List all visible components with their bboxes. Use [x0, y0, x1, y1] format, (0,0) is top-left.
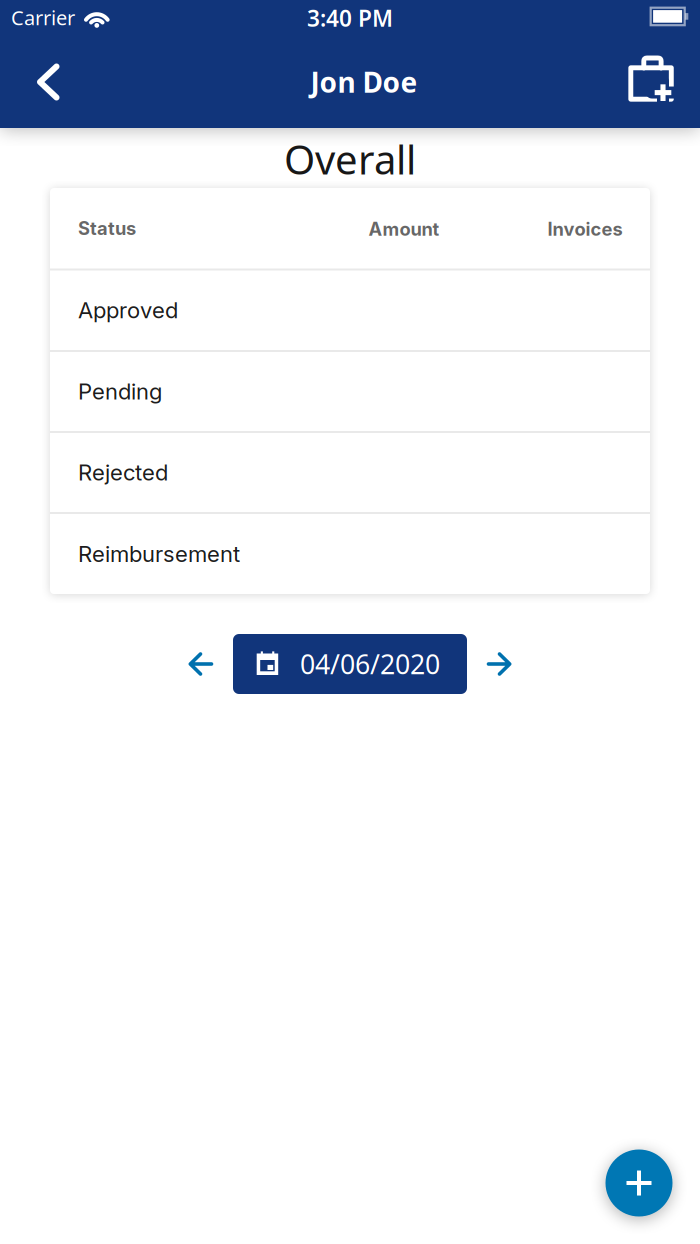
button[interactable]: Reimbursement: [50, 514, 650, 594]
staticText: Approved: [78, 297, 178, 324]
staticText: Carrier: [11, 4, 75, 31]
staticText: Amount: [368, 218, 439, 240]
button[interactable]: Previous period: [178, 640, 224, 688]
staticText: Rejected: [78, 459, 168, 486]
button[interactable]: Add: [605, 1149, 672, 1216]
staticText: Overall: [284, 132, 416, 185]
staticText: Invoices: [547, 218, 622, 240]
button[interactable]: 04/06/2020: [233, 634, 467, 694]
button[interactable]: Pending: [50, 352, 650, 431]
button[interactable]: Next period: [476, 640, 522, 688]
staticText: 3:40 PM: [307, 3, 393, 33]
staticText: Reimbursement: [78, 541, 240, 567]
button[interactable]: Approved: [50, 270, 650, 350]
staticText: Status: [78, 217, 136, 239]
staticText: 04/06/2020: [300, 646, 440, 682]
button[interactable]: Back: [9, 42, 87, 122]
button[interactable]: Add job: [609, 42, 691, 122]
staticText: Jon Doe: [310, 63, 417, 101]
button[interactable]: Rejected: [50, 433, 650, 512]
staticText: Pending: [78, 378, 162, 405]
